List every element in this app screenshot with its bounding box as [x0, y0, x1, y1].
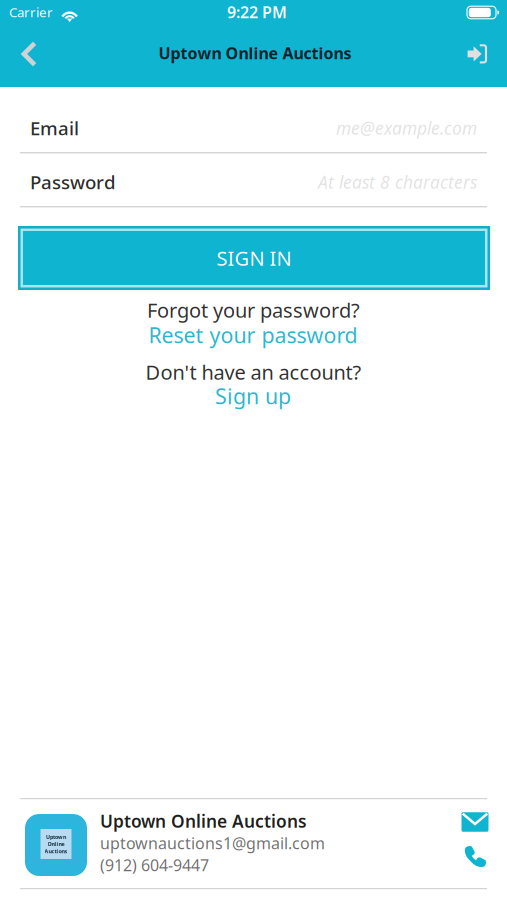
staticText: Uptown Online Auctions	[158, 42, 351, 64]
staticText: Forgot your password?	[147, 297, 360, 323]
staticText: uptownauctions1@gmail.com	[100, 832, 325, 854]
button[interactable]: Email	[455, 807, 495, 837]
staticText: Password	[30, 170, 116, 194]
staticText: me@example.com	[336, 116, 477, 139]
staticText: Uptown	[46, 833, 66, 840]
button[interactable]: Call	[455, 842, 495, 872]
staticText: Sign up	[215, 382, 291, 410]
button[interactable]: Back	[2, 27, 56, 81]
button[interactable]: SIGN IN	[18, 226, 490, 290]
staticText: Uptown Online Auctions	[100, 809, 307, 832]
staticText: Reset your password	[148, 321, 357, 349]
button[interactable]: Sign up	[183, 384, 323, 408]
staticText: (912) 604-9447	[100, 854, 209, 876]
staticText: Online	[47, 840, 64, 848]
staticText: 9:22 PM	[227, 1, 287, 23]
button[interactable]: Reset your password	[123, 323, 383, 347]
staticText: Auctions	[44, 847, 67, 855]
staticText: SIGN IN	[216, 245, 291, 271]
staticText: Don't have an account?	[145, 359, 361, 385]
staticText: Email	[30, 116, 79, 140]
staticText: At least 8 characters	[318, 170, 477, 193]
button[interactable]: Sign in	[453, 29, 503, 79]
staticText: Carrier	[9, 3, 53, 21]
